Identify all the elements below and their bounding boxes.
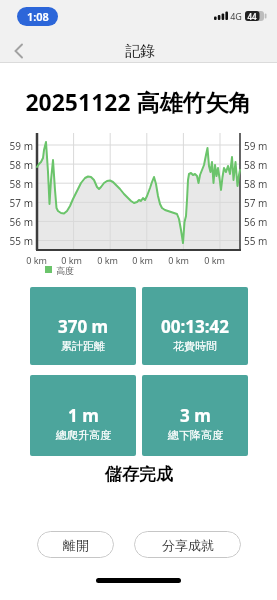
staticText: 1 m bbox=[68, 404, 99, 427]
staticText: 55 m bbox=[244, 234, 268, 246]
staticText: 58 m bbox=[9, 158, 33, 170]
staticText: 0 km bbox=[204, 254, 225, 266]
staticText: 59 m bbox=[244, 139, 268, 151]
staticText: 1:08 bbox=[27, 9, 49, 24]
staticText: 記錄 bbox=[125, 42, 155, 59]
button[interactable] bbox=[12, 43, 24, 59]
staticText: 0 km bbox=[61, 254, 82, 266]
staticText: 0 km bbox=[168, 254, 189, 266]
staticText: 57 m bbox=[244, 196, 268, 208]
staticText: 00:13:42 bbox=[161, 315, 229, 338]
button[interactable]: 離開 bbox=[37, 531, 114, 558]
button[interactable]: 1:08 bbox=[17, 7, 58, 26]
staticText: 0 km bbox=[97, 254, 118, 266]
staticText: 儲存完成 bbox=[105, 464, 173, 485]
staticText: 總下降高度 bbox=[168, 428, 223, 442]
staticText: 59 m bbox=[9, 139, 33, 151]
staticText: 55 m bbox=[9, 234, 33, 246]
staticText: 高度 bbox=[56, 265, 74, 276]
staticText: 0 km bbox=[26, 254, 47, 266]
staticText: 57 m bbox=[9, 196, 33, 208]
button[interactable]: 370 m bbox=[30, 287, 136, 365]
staticText: 56 m bbox=[244, 215, 268, 227]
staticText: 總爬升高度 bbox=[56, 428, 111, 442]
button[interactable]: 分享成就 bbox=[134, 531, 241, 558]
staticText: 56 m bbox=[9, 215, 33, 227]
staticText: 20251122 高雄竹矢角 bbox=[25, 86, 252, 114]
staticText: 370 m bbox=[58, 315, 109, 338]
staticText: 4G bbox=[230, 10, 242, 22]
staticText: 44 bbox=[247, 11, 257, 22]
button[interactable]: 1 m bbox=[30, 375, 136, 456]
staticText: 58 m bbox=[244, 177, 268, 189]
staticText: 離開 bbox=[63, 537, 89, 553]
staticText: 3 m bbox=[180, 404, 211, 427]
staticText: 累計距離 bbox=[61, 339, 105, 353]
staticText: 0 km bbox=[132, 254, 153, 266]
staticText: 58 m bbox=[244, 158, 268, 170]
button[interactable]: 00:13:42 bbox=[142, 287, 248, 365]
staticText: 花費時間 bbox=[173, 339, 217, 353]
button[interactable]: 3 m bbox=[142, 375, 248, 456]
staticText: 分享成就 bbox=[162, 537, 214, 553]
staticText: 58 m bbox=[9, 177, 33, 189]
